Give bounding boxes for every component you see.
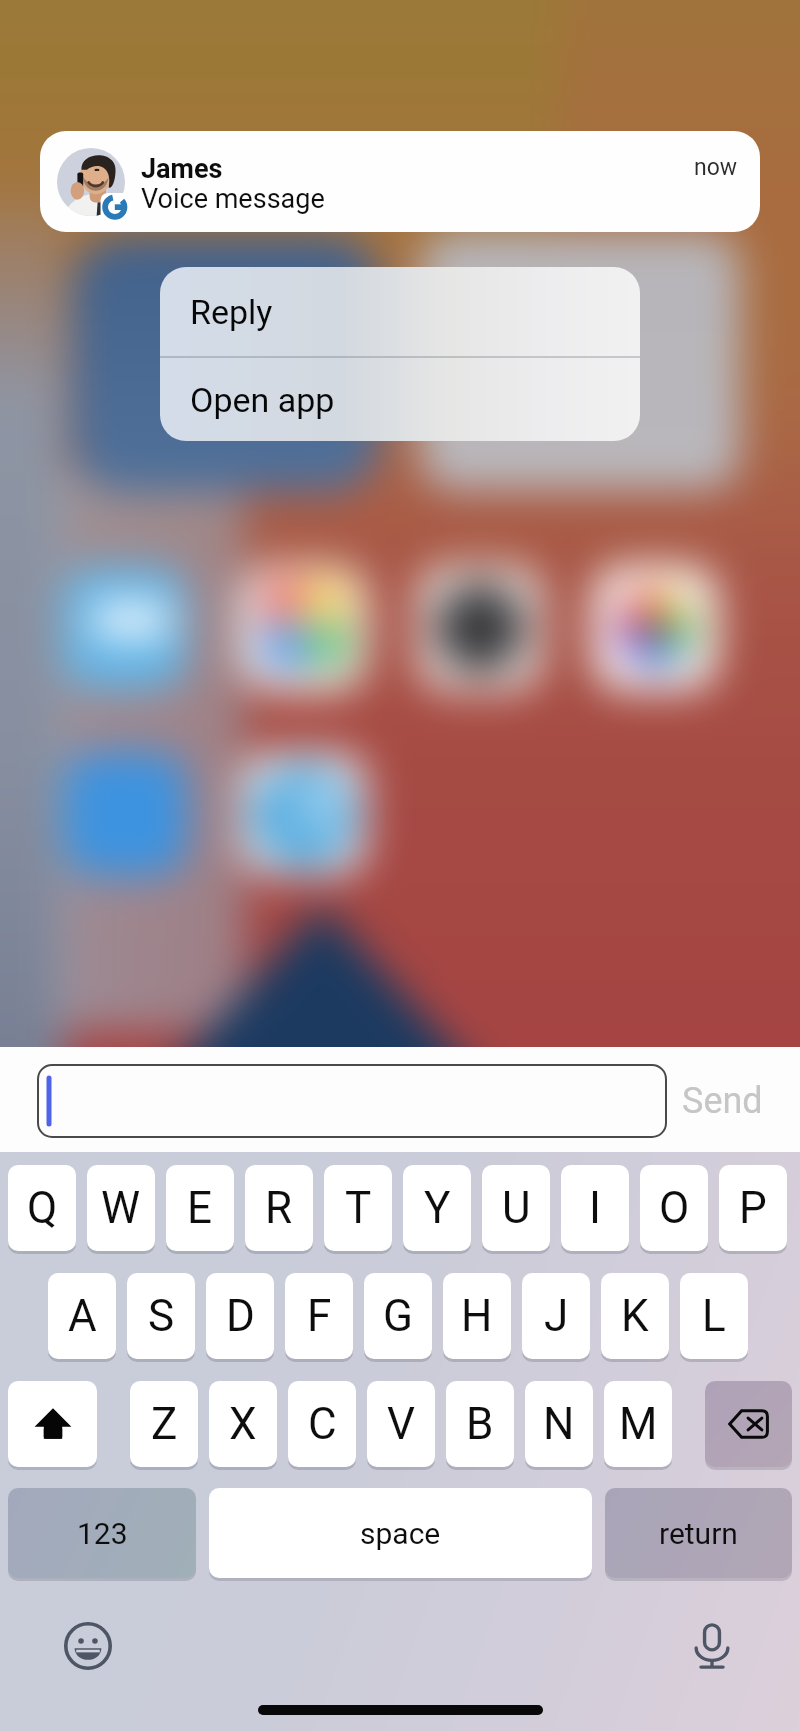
button[interactable]: space xyxy=(209,1488,592,1578)
button[interactable]: R xyxy=(245,1165,313,1251)
button[interactable]: I xyxy=(561,1165,629,1251)
staticText: space xyxy=(360,1516,441,1551)
button[interactable]: G xyxy=(364,1273,432,1359)
staticText: U xyxy=(502,1182,531,1234)
button[interactable]: return xyxy=(605,1488,792,1578)
staticText: J xyxy=(544,1290,569,1342)
button[interactable]: T xyxy=(324,1165,392,1251)
staticText: W xyxy=(101,1182,141,1234)
button[interactable]: X xyxy=(209,1381,277,1467)
button[interactable]: N xyxy=(525,1381,593,1467)
button[interactable]: James xyxy=(40,131,760,232)
button[interactable]: J xyxy=(522,1273,590,1359)
staticText: V xyxy=(387,1398,416,1450)
button[interactable]: S xyxy=(127,1273,195,1359)
staticText: Y xyxy=(424,1182,451,1234)
button[interactable]: A xyxy=(48,1273,116,1359)
button[interactable]: Dictation xyxy=(684,1618,740,1674)
staticText: T xyxy=(345,1182,372,1234)
button[interactable]: C xyxy=(288,1381,356,1467)
staticText: S xyxy=(148,1290,175,1342)
staticText: Send xyxy=(682,1080,763,1122)
button[interactable]: O xyxy=(640,1165,708,1251)
button[interactable]: Backspace xyxy=(705,1381,792,1467)
staticText: Reply xyxy=(190,292,273,332)
staticText: James xyxy=(141,153,223,185)
staticText: N xyxy=(543,1398,575,1450)
button[interactable]: D xyxy=(206,1273,274,1359)
staticText: X xyxy=(229,1398,257,1450)
button[interactable]: P xyxy=(719,1165,787,1251)
staticText: now xyxy=(694,154,738,181)
button[interactable]: B xyxy=(446,1381,514,1467)
button[interactable]: Send xyxy=(678,1065,766,1137)
button[interactable]: U xyxy=(482,1165,550,1251)
staticText: G xyxy=(383,1290,413,1342)
staticText: Q xyxy=(27,1182,58,1234)
button[interactable]: V xyxy=(367,1381,435,1467)
button[interactable]: Y xyxy=(403,1165,471,1251)
button[interactable] xyxy=(38,1065,666,1137)
button[interactable]: M xyxy=(604,1381,672,1467)
staticText: O xyxy=(659,1182,690,1234)
staticText: F xyxy=(307,1290,332,1342)
button[interactable]: Shift xyxy=(8,1381,97,1467)
staticText: L xyxy=(702,1290,726,1342)
button[interactable]: L xyxy=(680,1273,748,1359)
staticText: Open app xyxy=(190,380,335,420)
staticText: I xyxy=(589,1182,601,1234)
staticText: C xyxy=(308,1398,337,1450)
staticText: K xyxy=(621,1290,649,1342)
staticText: B xyxy=(466,1398,494,1450)
staticText: R xyxy=(265,1182,293,1234)
button[interactable]: K xyxy=(601,1273,669,1359)
staticText: Voice message xyxy=(141,183,325,215)
button[interactable]: Q xyxy=(8,1165,76,1251)
staticText: E xyxy=(187,1182,213,1234)
staticText: 123 xyxy=(77,1516,128,1551)
staticText: H xyxy=(461,1290,493,1342)
button[interactable]: W xyxy=(87,1165,155,1251)
button[interactable]: Emoji keyboard xyxy=(60,1618,116,1674)
button[interactable]: E xyxy=(166,1165,234,1251)
staticText: A xyxy=(68,1290,97,1342)
button[interactable]: Z xyxy=(130,1381,198,1467)
button[interactable]: 123 xyxy=(8,1488,196,1578)
staticText: D xyxy=(226,1290,255,1342)
staticText: M xyxy=(619,1398,658,1450)
button[interactable]: F xyxy=(285,1273,353,1359)
staticText: P xyxy=(739,1182,767,1234)
staticText: Z xyxy=(151,1398,178,1450)
button[interactable]: Open app xyxy=(160,358,640,441)
button[interactable]: H xyxy=(443,1273,511,1359)
staticText: return xyxy=(659,1516,738,1551)
button[interactable]: Reply xyxy=(160,267,640,356)
